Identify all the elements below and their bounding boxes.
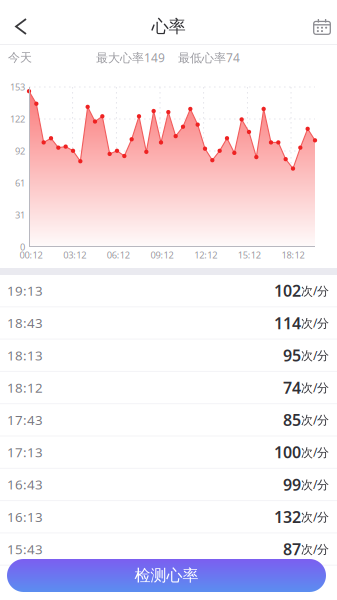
staticText: 16:13: [7, 508, 43, 526]
staticText: 17:43: [7, 411, 43, 429]
staticText: 12:12: [194, 249, 217, 261]
staticText: 06:12: [107, 249, 130, 261]
button[interactable]: 18:43: [0, 307, 337, 340]
staticText: 153: [10, 81, 25, 93]
staticText: 今天: [8, 50, 32, 65]
staticText: 最大心率149: [96, 49, 165, 65]
button[interactable]: 16:13: [0, 501, 337, 533]
staticText: 次/分: [301, 380, 329, 395]
staticText: 0: [20, 241, 25, 253]
staticText: 03:12: [63, 249, 86, 261]
staticText: 最低心率74: [178, 49, 240, 65]
staticText: 74: [283, 377, 301, 398]
staticText: 100: [274, 441, 301, 463]
staticText: 102: [274, 280, 301, 301]
staticText: 122: [10, 113, 25, 125]
staticText: 检测心率: [134, 566, 198, 585]
button[interactable]: 15:43: [0, 533, 337, 566]
staticText: 18:13: [7, 346, 43, 364]
staticText: 15:12: [238, 249, 261, 261]
staticText: 次/分: [301, 347, 329, 363]
staticText: 31: [15, 209, 25, 221]
staticText: 92: [15, 145, 25, 157]
staticText: 次/分: [301, 509, 329, 525]
staticText: 85: [283, 409, 301, 430]
staticText: 次/分: [301, 476, 329, 492]
button[interactable]: 17:43: [0, 404, 337, 436]
staticText: 19:13: [7, 282, 43, 299]
staticText: 18:12: [281, 249, 304, 261]
staticText: 次/分: [301, 315, 329, 331]
staticText: 次/分: [301, 444, 329, 460]
staticText: 87: [283, 538, 301, 560]
staticText: 09:12: [150, 249, 173, 261]
staticText: 次/分: [301, 412, 329, 428]
staticText: 15:43: [7, 540, 43, 558]
staticText: 次/分: [301, 541, 329, 557]
staticText: 18:43: [7, 314, 43, 332]
staticText: 心率: [151, 16, 185, 37]
staticText: 00:12: [19, 249, 42, 261]
button[interactable]: Calendar: [301, 8, 337, 45]
button[interactable]: 18:13: [0, 340, 337, 372]
staticText: 114: [274, 312, 301, 333]
staticText: 18:12: [7, 379, 43, 396]
staticText: 61: [15, 177, 25, 189]
staticText: 132: [274, 506, 301, 527]
button[interactable]: 18:12: [0, 372, 337, 404]
staticText: 99: [283, 474, 301, 495]
staticText: 16:43: [7, 476, 43, 493]
button[interactable]: 17:13: [0, 436, 337, 469]
button[interactable]: 16:43: [0, 469, 337, 501]
button[interactable]: Back: [0, 9, 40, 44]
staticText: 17:13: [7, 443, 43, 461]
staticText: 次/分: [301, 283, 329, 299]
staticText: 95: [283, 345, 301, 366]
button[interactable]: 19:13: [0, 275, 337, 307]
button[interactable]: 检测心率: [7, 559, 326, 592]
